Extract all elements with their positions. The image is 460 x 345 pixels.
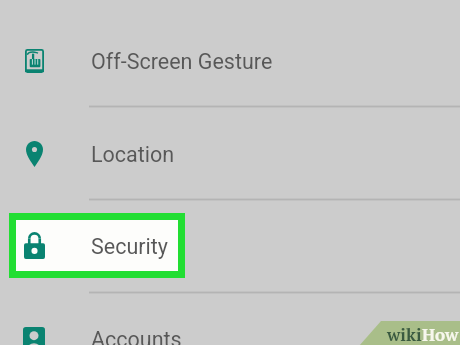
other: Accounts [23, 327, 45, 345]
button[interactable]: Location [0, 107, 460, 200]
staticText: How [422, 323, 459, 345]
button[interactable]: Accounts [0, 292, 460, 345]
button[interactable]: Security [0, 199, 460, 292]
staticText: Off-Screen Gesture [91, 49, 273, 74]
button[interactable]: Off-Screen Gesture [0, 14, 460, 107]
staticText: Security [91, 234, 168, 259]
staticText: Location [91, 142, 175, 167]
staticText: wiki [387, 323, 422, 345]
other: Location [26, 141, 43, 167]
staticText: Accounts [91, 327, 182, 345]
other: Off-Screen Gesture [25, 49, 44, 73]
